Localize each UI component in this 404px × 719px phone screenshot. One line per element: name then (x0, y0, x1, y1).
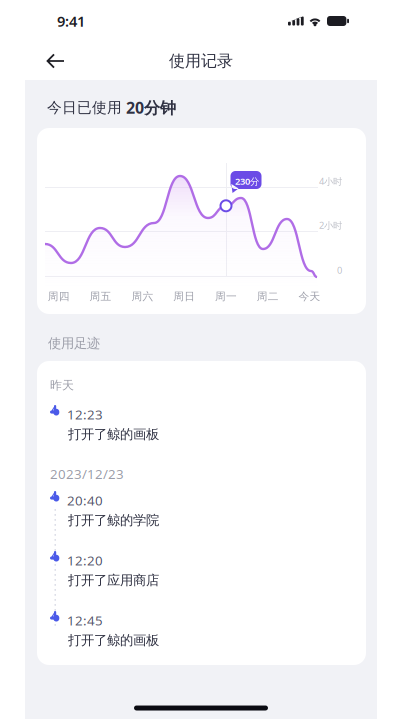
staticText: 今天 (299, 290, 321, 303)
staticText: 12:45 (67, 611, 103, 629)
button[interactable]: 20:40 (50, 491, 330, 527)
staticText: 今日已使用 (47, 99, 126, 117)
staticText: 打开了鲸的学院 (68, 512, 159, 528)
staticText: 周六 (131, 290, 153, 303)
button[interactable]: 12:20 (50, 551, 330, 587)
staticText: 周日 (173, 290, 195, 303)
staticText: 打开了应用商店 (68, 572, 159, 588)
staticText: 周一 (215, 290, 237, 303)
staticText: 20:40 (67, 491, 103, 509)
staticText: 9:41 (57, 11, 85, 31)
staticText: 打开了鲸的画板 (68, 632, 159, 648)
button[interactable]: 12:45 (50, 611, 330, 647)
staticText: 周五 (90, 290, 112, 303)
staticText: 0 (337, 264, 342, 276)
button[interactable]: 12:23 (50, 405, 330, 441)
staticText: 周四 (48, 290, 70, 303)
staticText: 2023/12/23 (50, 465, 124, 483)
staticText: 2小时 (319, 219, 342, 231)
staticText: 打开了鲸的画板 (68, 426, 159, 442)
staticText: 4小时 (319, 175, 342, 187)
button[interactable]: Back (35, 42, 76, 79)
staticText: 使用记录 (169, 51, 233, 71)
staticText: 12:23 (67, 405, 103, 423)
staticText: 使用足迹 (48, 335, 100, 351)
staticText: 昨天 (50, 378, 74, 393)
staticText: 12:20 (67, 551, 103, 569)
staticText: 230分 (235, 175, 259, 187)
staticText: 20分钟 (126, 97, 176, 118)
staticText: 周二 (257, 290, 279, 303)
